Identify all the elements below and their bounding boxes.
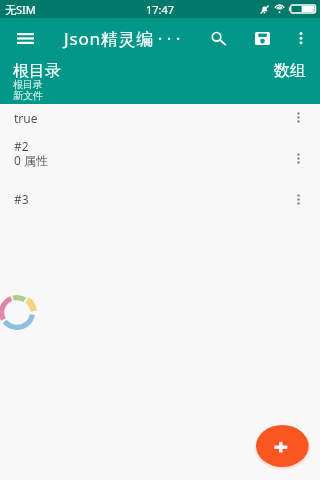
staticText: 新文件	[13, 89, 43, 102]
button[interactable]: Item options	[284, 106, 313, 128]
staticText: #3	[14, 191, 29, 207]
button[interactable]: Item options	[284, 188, 313, 210]
button[interactable]: Save	[245, 18, 279, 58]
staticText: 根目录	[13, 61, 61, 81]
button[interactable]: Search	[201, 18, 235, 58]
button[interactable]: true	[0, 104, 320, 136]
button[interactable]: Item options	[284, 147, 313, 169]
button[interactable]: More options	[289, 18, 313, 58]
staticText: 0 属性	[14, 152, 48, 168]
staticText: true	[14, 110, 38, 126]
button[interactable]: #2	[0, 136, 320, 182]
staticText: 根目录	[13, 78, 43, 91]
button[interactable]: Add	[252, 421, 313, 471]
staticText: Json精灵编 · · ·	[64, 27, 182, 50]
staticText: #2	[14, 138, 29, 154]
staticText: 无SIM	[5, 2, 36, 17]
button[interactable]: Menu	[8, 18, 42, 58]
button[interactable]: #3	[0, 187, 320, 217]
staticText: 数组	[274, 61, 306, 81]
staticText: 17:47	[146, 2, 175, 17]
